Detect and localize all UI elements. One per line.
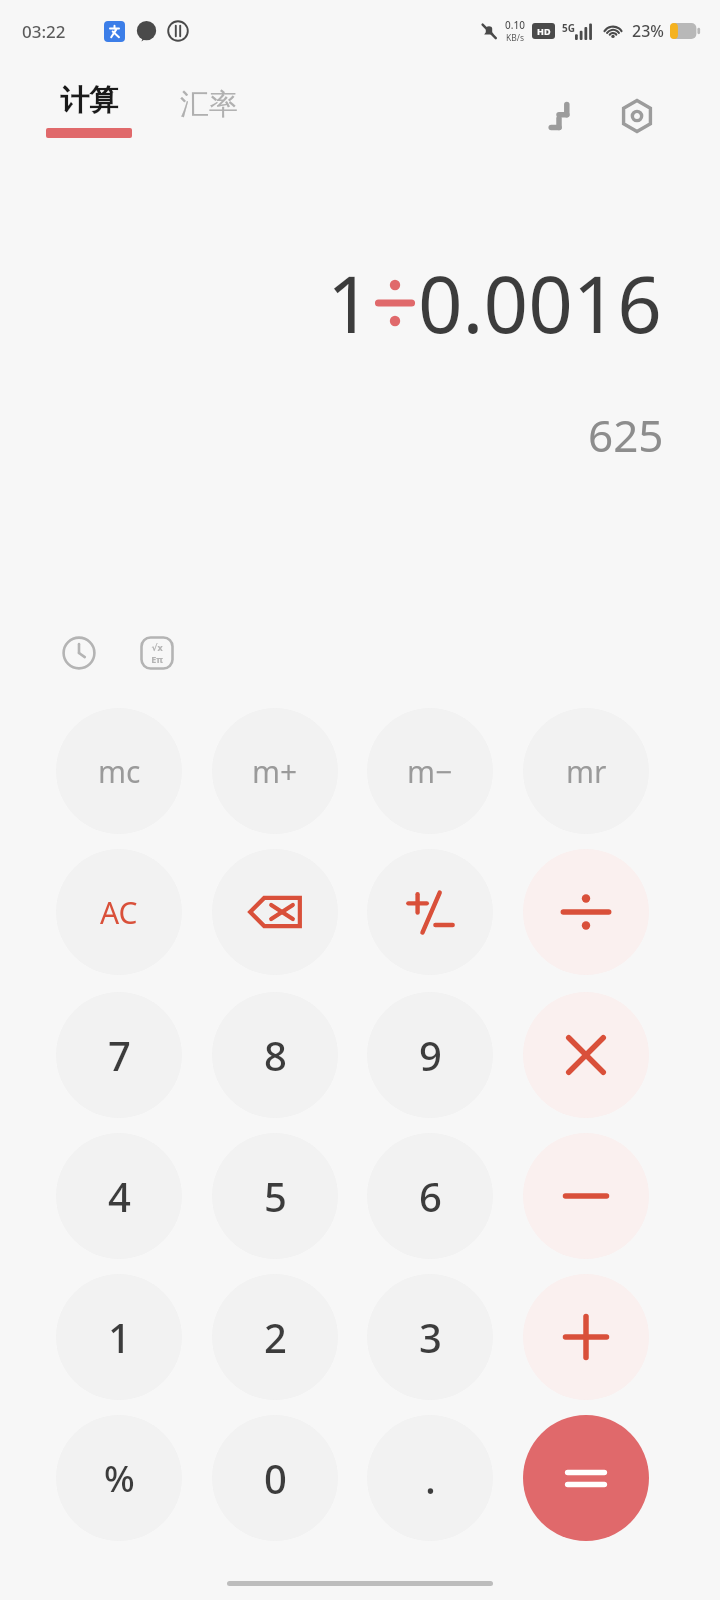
button[interactable]: 0 bbox=[212, 1415, 338, 1541]
staticText: 1 bbox=[327, 250, 372, 356]
button[interactable]: 5 bbox=[212, 1133, 338, 1259]
button[interactable]: 1 bbox=[56, 1274, 182, 1400]
staticText: mc bbox=[98, 751, 141, 792]
button[interactable]: 汇率 bbox=[172, 82, 246, 127]
button[interactable]: 4 bbox=[56, 1133, 182, 1259]
staticText: 计算 bbox=[60, 82, 118, 119]
staticText: 4 bbox=[108, 1169, 131, 1223]
button[interactable]: 3 bbox=[367, 1274, 493, 1400]
button[interactable]: % bbox=[56, 1415, 182, 1541]
button[interactable]: AC bbox=[56, 849, 182, 975]
button[interactable]: Collapse bbox=[533, 90, 585, 142]
staticText: mr bbox=[566, 751, 607, 792]
staticText: 23% bbox=[632, 20, 664, 42]
staticText: 0 bbox=[264, 1451, 287, 1505]
staticText: 汇率 bbox=[180, 86, 238, 123]
staticText: √x bbox=[151, 641, 163, 653]
staticText: KB/s bbox=[506, 32, 525, 44]
button[interactable]: Equals bbox=[523, 1415, 649, 1541]
staticText: m+ bbox=[252, 751, 298, 792]
staticText: m− bbox=[407, 751, 453, 792]
staticText: 5 bbox=[264, 1169, 287, 1223]
button[interactable]: Plus bbox=[523, 1274, 649, 1400]
staticText: . bbox=[425, 1451, 436, 1505]
button[interactable]: Divide bbox=[523, 849, 649, 975]
button[interactable]: 9 bbox=[367, 992, 493, 1118]
staticText: 625 bbox=[588, 405, 664, 465]
button[interactable]: mc bbox=[56, 708, 182, 834]
button[interactable]: m+ bbox=[212, 708, 338, 834]
staticText: 5G bbox=[562, 21, 575, 35]
button[interactable]: 6 bbox=[367, 1133, 493, 1259]
staticText: HD bbox=[537, 25, 551, 37]
staticText: 8 bbox=[264, 1028, 287, 1082]
button[interactable]: History bbox=[56, 630, 102, 676]
staticText: 9 bbox=[419, 1028, 442, 1082]
button[interactable]: Settings bbox=[611, 90, 663, 142]
button[interactable]: 计算 bbox=[38, 78, 140, 142]
staticText: Eπ bbox=[151, 653, 163, 665]
button[interactable]: Multiply bbox=[523, 992, 649, 1118]
button[interactable]: 8 bbox=[212, 992, 338, 1118]
staticText: 0.0016 bbox=[418, 250, 662, 356]
button[interactable]: m− bbox=[367, 708, 493, 834]
staticText: 7 bbox=[108, 1028, 131, 1082]
button[interactable]: Backspace bbox=[212, 849, 338, 975]
staticText: 6 bbox=[419, 1169, 442, 1223]
button[interactable]: Minus bbox=[523, 1133, 649, 1259]
staticText: % bbox=[104, 1454, 135, 1503]
button[interactable]: Scientific bbox=[134, 630, 180, 676]
staticText: 0.10 bbox=[505, 18, 525, 32]
button[interactable]: Plus minus bbox=[367, 849, 493, 975]
staticText: 3 bbox=[419, 1310, 442, 1364]
staticText: 1 bbox=[108, 1310, 131, 1364]
button[interactable]: 2 bbox=[212, 1274, 338, 1400]
button[interactable]: 7 bbox=[56, 992, 182, 1118]
button[interactable]: . bbox=[367, 1415, 493, 1541]
staticText: 03:22 bbox=[22, 20, 66, 43]
staticText: AC bbox=[100, 892, 138, 933]
staticText: 2 bbox=[264, 1310, 287, 1364]
button[interactable]: mr bbox=[523, 708, 649, 834]
